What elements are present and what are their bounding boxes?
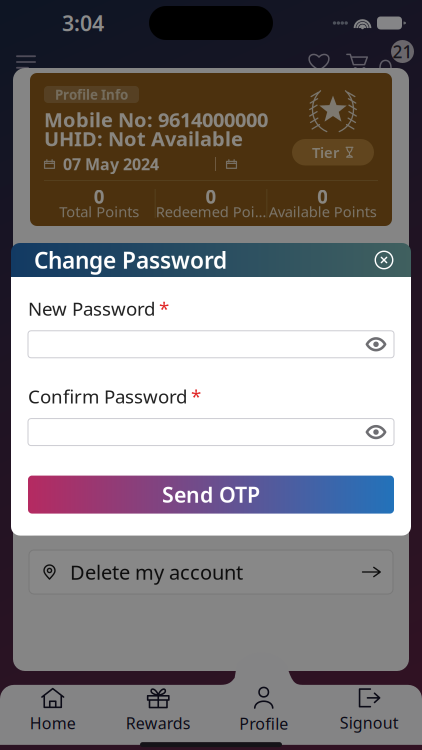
button[interactable]: Show password xyxy=(358,419,394,446)
button[interactable]: Near By Dealers xyxy=(29,491,393,535)
staticText: 07 May 2024 xyxy=(63,153,159,175)
staticText: Redeemed Points xyxy=(156,202,266,221)
staticText: Confirm Password xyxy=(28,384,187,409)
staticText: Disclaimer xyxy=(72,441,171,467)
staticText: Home xyxy=(30,712,76,734)
staticText: Total Points xyxy=(59,202,139,221)
staticText: Signout xyxy=(340,712,399,733)
button[interactable]: Terms & Conditions xyxy=(29,373,393,417)
staticText: * xyxy=(191,384,201,409)
button[interactable]: Disclaimer xyxy=(29,432,393,476)
button[interactable]: Notifications xyxy=(376,46,410,78)
staticText: UHID: Not Available xyxy=(44,125,243,152)
button[interactable]: Wishlist xyxy=(300,46,338,78)
staticText: Send OTP xyxy=(162,480,260,509)
button[interactable]: Show password xyxy=(358,331,394,358)
button[interactable]: Profile xyxy=(211,687,316,734)
button[interactable]: Send OTP xyxy=(28,476,394,514)
button[interactable]: Rewards xyxy=(105,687,211,734)
staticText: Tier xyxy=(312,142,339,162)
button[interactable]: Close xyxy=(368,244,400,276)
button[interactable]: Cart xyxy=(338,46,376,78)
staticText: 21 xyxy=(392,40,412,63)
staticText: My Transactions xyxy=(70,323,221,349)
staticText: Profile xyxy=(239,713,288,734)
staticText: Change Password xyxy=(34,245,227,275)
staticText: * xyxy=(159,296,169,321)
button[interactable]: Home xyxy=(0,687,105,734)
button[interactable]: My Transactions xyxy=(29,314,393,358)
staticText: Terms & Conditions xyxy=(70,382,253,408)
button[interactable]: Change Password xyxy=(29,255,393,299)
staticText: Change Password xyxy=(70,264,237,290)
staticText: Near By Dealers xyxy=(70,500,219,526)
staticText: Profile Info xyxy=(55,86,128,103)
button[interactable]: Delete my account xyxy=(29,550,393,594)
button[interactable]: Menu xyxy=(0,46,58,78)
staticText: New Password xyxy=(28,296,155,321)
staticText: Delete my account xyxy=(70,559,243,585)
staticText: Available Points xyxy=(269,202,377,221)
staticText: Mobile No: 9614000000 xyxy=(44,106,268,133)
staticText: 0 xyxy=(205,184,216,209)
staticText: 0 xyxy=(317,184,328,209)
staticText: 0 xyxy=(94,184,105,209)
staticText: 3:04 xyxy=(62,9,104,37)
staticText: Rewards xyxy=(126,712,191,734)
button[interactable]: Signout xyxy=(316,688,422,733)
